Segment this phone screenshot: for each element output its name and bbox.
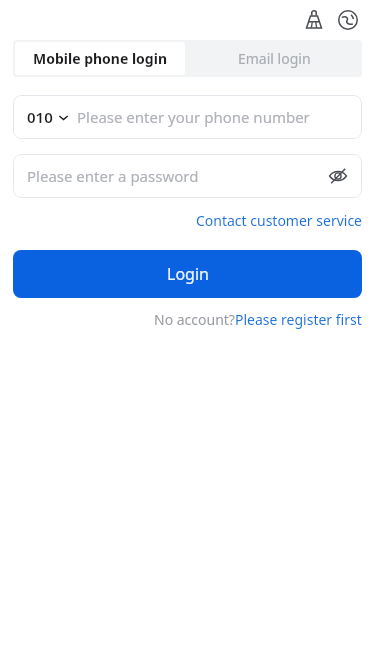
button[interactable]: 010 <box>27 95 69 139</box>
button[interactable]: Mobile phone login <box>15 42 185 75</box>
staticText: 010 <box>27 107 53 127</box>
staticText: Login <box>167 263 209 285</box>
staticText: Please register first <box>235 310 362 329</box>
button[interactable]: Show password <box>324 162 352 190</box>
button[interactable]: Please register first <box>235 310 362 329</box>
staticText: Mobile phone login <box>33 49 168 68</box>
staticText: Contact customer service <box>195 211 362 230</box>
button[interactable]: Contact customer service <box>195 208 362 233</box>
staticText: Please enter a password <box>27 166 324 186</box>
staticText: Email login <box>238 49 311 68</box>
button[interactable]: Language <box>333 5 363 35</box>
button[interactable]: Email login <box>187 40 362 77</box>
button[interactable]: Login <box>13 250 362 298</box>
button[interactable]: Clear cache <box>299 5 329 35</box>
staticText: No account? <box>154 310 235 329</box>
staticText: Please enter your phone number <box>77 107 310 127</box>
